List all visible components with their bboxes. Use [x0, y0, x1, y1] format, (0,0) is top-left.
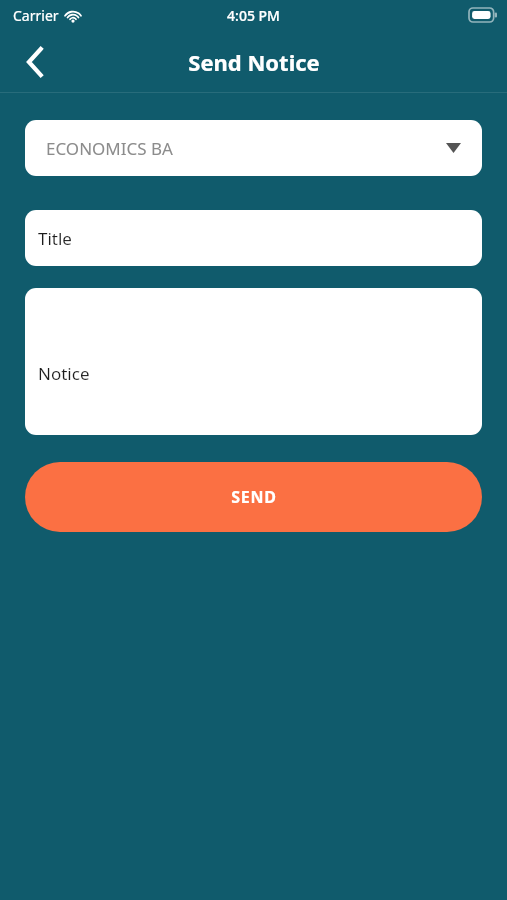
- staticText: Notice: [38, 362, 90, 385]
- staticText: Title: [38, 227, 72, 250]
- staticText: SEND: [231, 486, 277, 508]
- staticText: ECONOMICS BA: [46, 137, 173, 160]
- staticText: 4:05 PM: [227, 6, 280, 25]
- button[interactable]: ECONOMICS BA: [25, 120, 482, 176]
- staticText: Carrier: [13, 6, 59, 25]
- button[interactable]: Back: [12, 39, 58, 85]
- button[interactable]: Notice: [25, 288, 482, 435]
- button[interactable]: SEND: [25, 462, 482, 532]
- staticText: Send Notice: [188, 47, 320, 77]
- button[interactable]: Title: [25, 210, 482, 266]
